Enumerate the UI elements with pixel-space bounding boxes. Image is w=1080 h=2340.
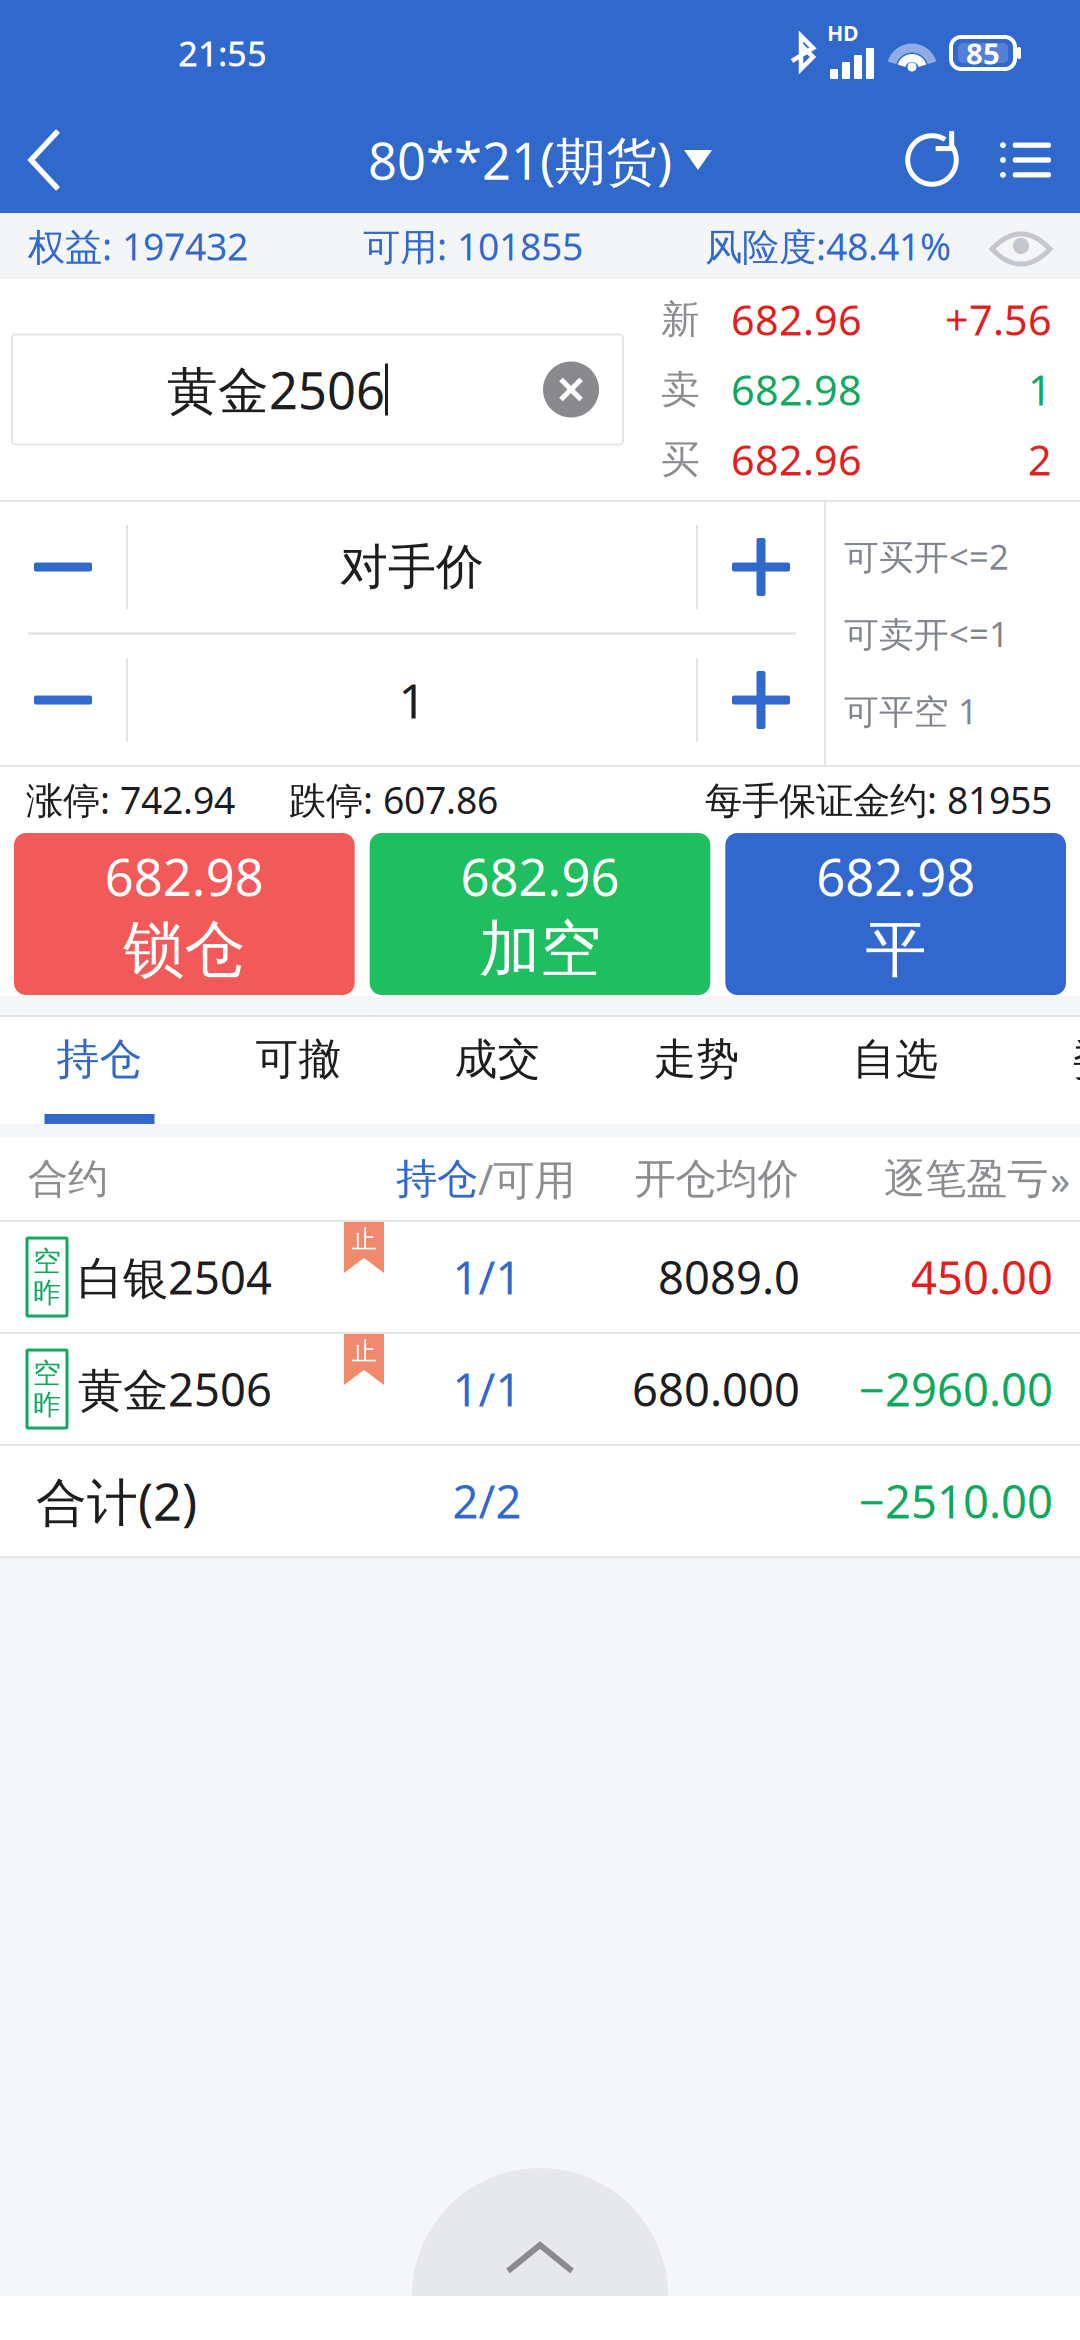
staticText: 涨停: 742.94 <box>26 775 235 824</box>
button[interactable]: Refresh <box>905 106 959 213</box>
staticText: 682.96 <box>731 292 862 347</box>
button[interactable]: 80**21(期货) <box>368 106 712 213</box>
staticText: −2960.00 <box>859 1359 1053 1419</box>
staticText: 可买开<=2 <box>844 533 1009 579</box>
staticText: 持仓 <box>396 1154 478 1204</box>
staticText: 80**21(期货) <box>368 126 672 194</box>
staticText: 8089.0 <box>658 1247 800 1307</box>
button[interactable]: 682.98 <box>14 833 355 995</box>
staticText: 黄金2506 <box>78 1359 272 1419</box>
button[interactable]: 空 <box>0 1334 1080 1444</box>
staticText: 21:55 <box>178 30 267 76</box>
staticText: » <box>1050 1152 1070 1205</box>
staticText: 1 <box>1028 362 1052 417</box>
staticText: 空 <box>33 1356 61 1390</box>
button[interactable]: Decrease <box>0 501 126 632</box>
staticText: 黄金2506 <box>167 356 385 423</box>
staticText: 可卖开<=1 <box>844 610 1009 656</box>
staticText: 平 <box>865 912 926 987</box>
staticText: 可平空 1 <box>844 688 978 734</box>
staticText: 自选 <box>852 1033 938 1085</box>
staticText: 450.00 <box>911 1247 1053 1307</box>
button[interactable]: 走势 <box>597 1017 796 1124</box>
staticText: 加空 <box>479 912 601 987</box>
staticText: 跌停: 607.86 <box>289 775 498 824</box>
staticText: +7.56 <box>945 292 1052 347</box>
staticText: /可用 <box>478 1152 575 1206</box>
staticText: 1 <box>398 668 425 732</box>
staticText: 昨 <box>33 1275 61 1310</box>
button[interactable]: 空 <box>0 1222 1080 1332</box>
button[interactable]: Expand panel <box>412 2168 668 2296</box>
button[interactable]: 持仓 <box>0 1017 199 1124</box>
staticText: 682.98 <box>816 843 975 910</box>
button[interactable]: Back <box>29 106 60 213</box>
button[interactable]: Toggle balance visibility <box>991 213 1051 279</box>
staticText: 空 <box>33 1244 61 1278</box>
staticText: 682.96 <box>460 843 619 910</box>
staticText: 对手价 <box>340 537 484 596</box>
staticText: 止 <box>351 1224 376 1255</box>
staticText: 白银2504 <box>78 1247 272 1307</box>
staticText: 逐笔盈亏 <box>884 1154 1048 1204</box>
staticText: 权益: 197432 <box>28 221 248 271</box>
button[interactable]: Increase <box>698 634 824 765</box>
staticText: 每手保证金约: 81955 <box>705 775 1052 824</box>
staticText: 合约 <box>28 1154 108 1203</box>
staticText: 1/1 <box>452 1247 521 1307</box>
staticText: 85 <box>966 33 1000 72</box>
staticText: −2510.00 <box>859 1471 1053 1531</box>
staticText: 锁仓 <box>123 912 245 987</box>
staticText: 新 <box>661 296 700 343</box>
staticText: 买 <box>661 436 700 483</box>
staticText: 2/2 <box>452 1471 521 1531</box>
staticText: 682.98 <box>105 843 264 910</box>
button[interactable]: Decrease <box>0 634 126 765</box>
staticText: 682.96 <box>731 432 862 487</box>
button[interactable]: 682.96 <box>370 833 710 995</box>
button[interactable]: 可撤 <box>199 1017 398 1124</box>
staticText: 680.000 <box>632 1359 800 1419</box>
button[interactable]: 682.98 <box>725 833 1066 995</box>
staticText: 止 <box>351 1336 376 1367</box>
staticText: 成交 <box>454 1033 540 1085</box>
staticText: 卖 <box>661 366 700 413</box>
staticText: 合计(2) <box>36 1467 197 1535</box>
button[interactable]: 成交 <box>398 1017 597 1124</box>
staticText: 委 <box>1073 1033 1080 1085</box>
staticText: 可用: 101855 <box>363 221 583 271</box>
staticText: 开仓均价 <box>634 1154 798 1204</box>
button[interactable]: Menu <box>999 106 1052 213</box>
staticText: 持仓 <box>56 1033 142 1085</box>
staticText: HD <box>827 19 859 47</box>
staticText: 昨 <box>33 1387 61 1422</box>
button[interactable]: 自选 <box>796 1017 995 1124</box>
staticText: 走势 <box>653 1033 739 1085</box>
staticText: 可撤 <box>255 1033 341 1085</box>
staticText: 682.98 <box>731 362 862 417</box>
staticText: 1/1 <box>452 1359 521 1419</box>
button[interactable]: Increase <box>698 501 824 632</box>
button[interactable]: 黄金2506 <box>12 334 623 444</box>
button[interactable]: 委 <box>995 1017 1080 1124</box>
staticText: 风险度:48.41% <box>705 221 951 271</box>
staticText: 2 <box>1028 432 1052 487</box>
